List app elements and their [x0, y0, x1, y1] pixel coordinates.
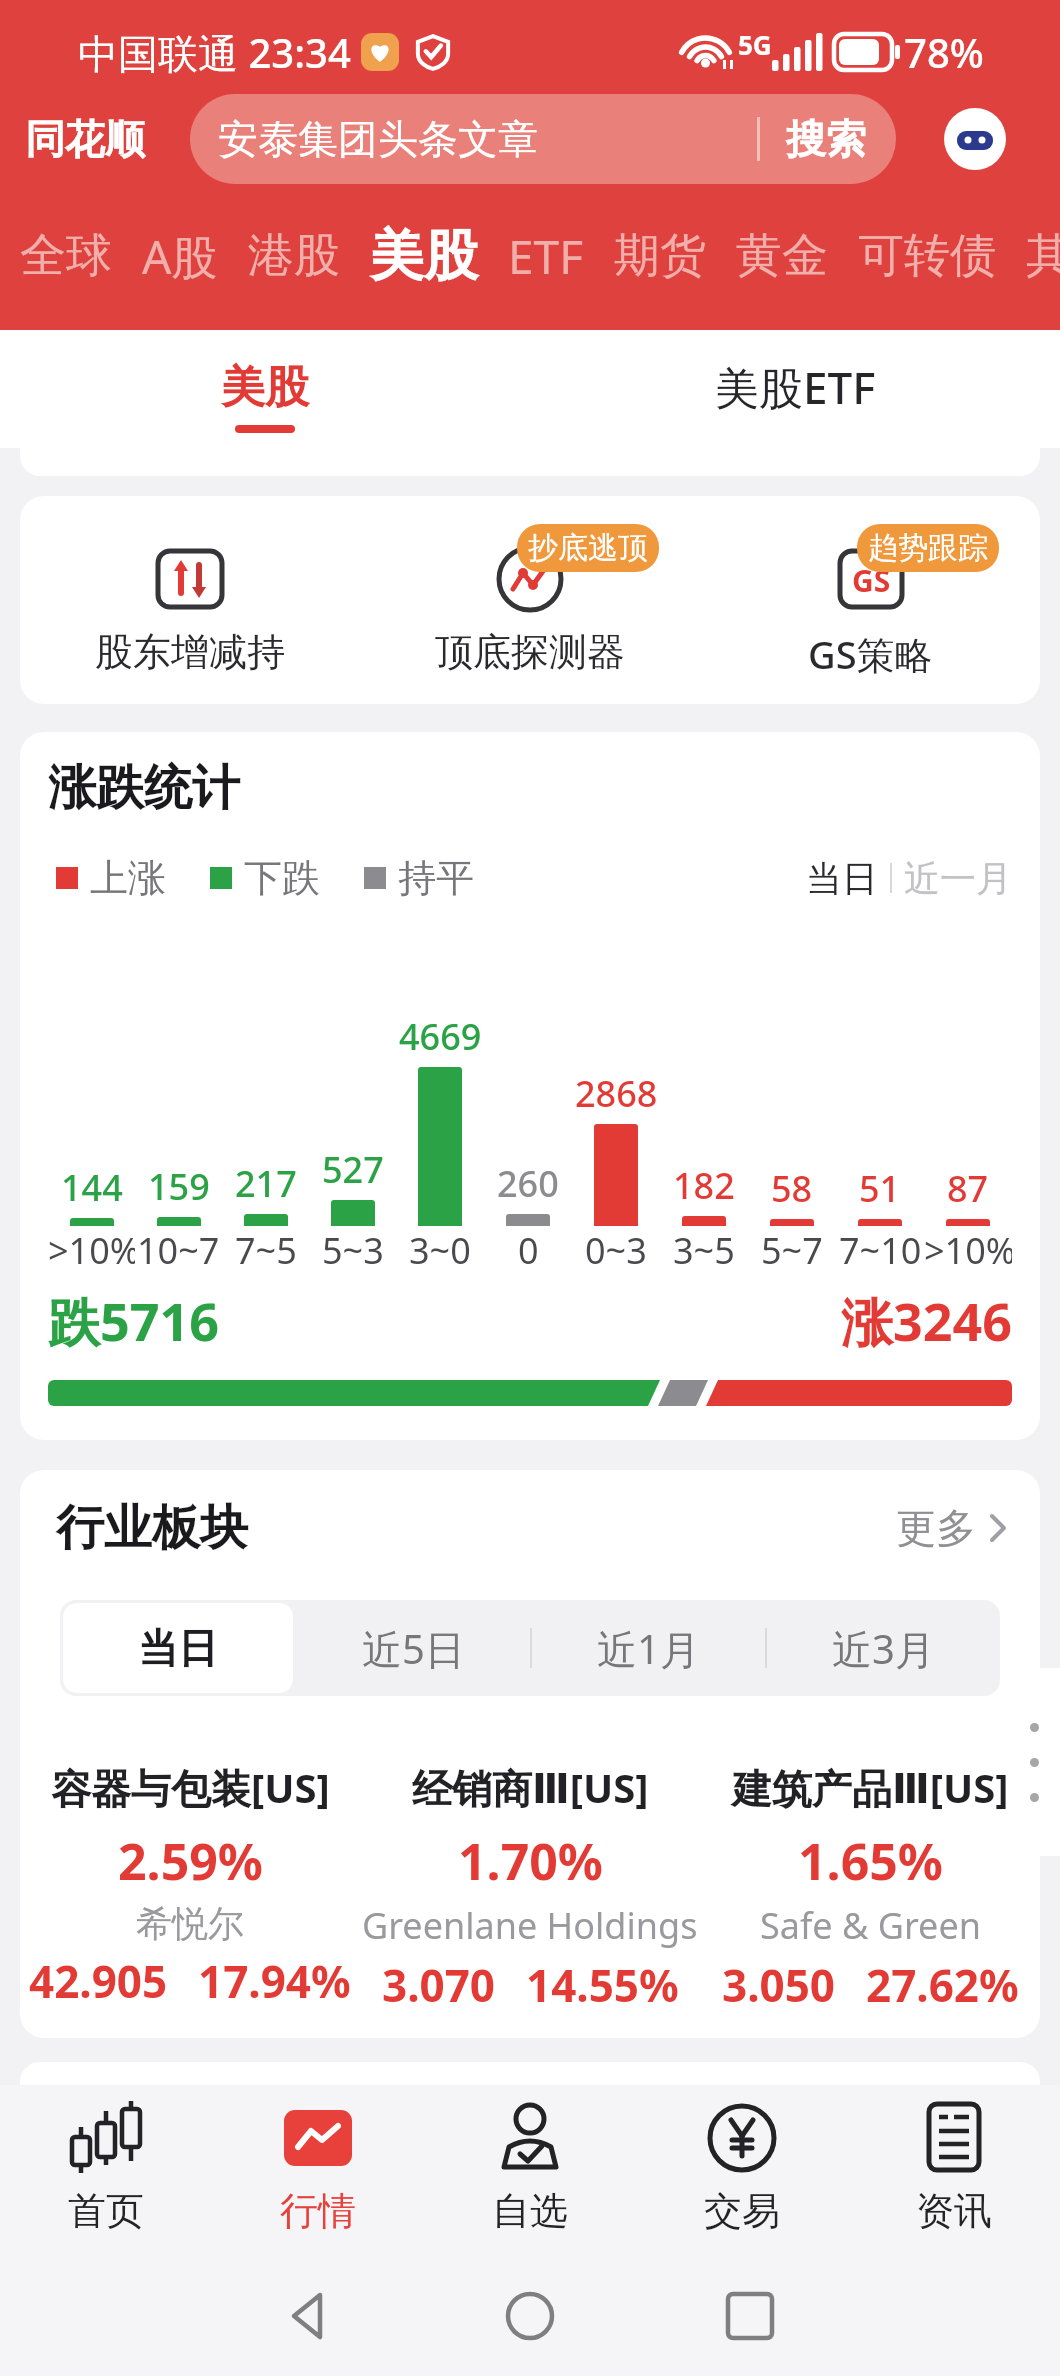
- staticText: 安泰集团头条文章: [218, 114, 538, 164]
- button[interactable]: 近3月: [767, 1600, 1000, 1696]
- button[interactable]: [284, 2290, 336, 2342]
- button[interactable]: [1008, 1668, 1060, 1856]
- staticText: 上涨: [90, 854, 166, 902]
- button[interactable]: 当日: [63, 1603, 293, 1693]
- button[interactable]: ETF: [508, 225, 584, 288]
- staticText: 4669: [399, 1012, 482, 1061]
- staticText: 5~3: [322, 1226, 384, 1275]
- button[interactable]: 期货: [614, 227, 706, 285]
- staticText: Safe & Green: [760, 1901, 981, 1950]
- staticText: 3.050: [722, 1955, 836, 2015]
- staticText: 5~7: [761, 1226, 823, 1275]
- staticText: >10%: [924, 1226, 1012, 1275]
- staticText: 行情: [280, 2187, 356, 2235]
- staticText: 自选: [492, 2187, 568, 2235]
- button[interactable]: 可转债: [858, 227, 996, 285]
- staticText: 78%: [904, 25, 984, 79]
- staticText: 3~5: [673, 1226, 735, 1275]
- staticText: 527: [322, 1145, 384, 1194]
- staticText: 下跌: [244, 854, 320, 902]
- button[interactable]: 当日: [806, 856, 878, 901]
- button[interactable]: 全球: [20, 227, 112, 285]
- button[interactable]: 股东增减持: [20, 496, 360, 704]
- staticText: 当日: [138, 1623, 218, 1673]
- staticText: 美股: [221, 360, 309, 415]
- staticText: 经销商Ⅲ[US]: [412, 1760, 649, 1815]
- button[interactable]: 资讯: [848, 2099, 1060, 2235]
- button[interactable]: 经销商Ⅲ[US]: [360, 1760, 700, 2015]
- button[interactable]: 美股ETF: [530, 330, 1060, 448]
- button[interactable]: 容器与包装[US]: [20, 1760, 360, 2011]
- button[interactable]: 顶底探测器: [360, 496, 700, 704]
- button[interactable]: 其他: [1026, 227, 1060, 285]
- staticText: 3.070: [382, 1955, 496, 2015]
- button[interactable]: [942, 106, 1008, 172]
- staticText: 搜索: [786, 114, 866, 164]
- staticText: 资讯: [916, 2187, 992, 2235]
- staticText: 跌5716: [48, 1285, 219, 1356]
- staticText: 260: [497, 1159, 559, 1208]
- staticText: 159: [148, 1162, 210, 1211]
- staticText: 行业板块: [56, 1498, 248, 1558]
- staticText: 建筑产品Ⅲ[US]: [732, 1760, 1009, 1815]
- staticText: 涨3246: [841, 1285, 1012, 1356]
- staticText: 3~0: [409, 1226, 471, 1275]
- button[interactable]: 近一月: [904, 856, 1012, 901]
- button[interactable]: 港股: [248, 227, 340, 285]
- button[interactable]: 交易: [636, 2099, 848, 2235]
- staticText: 中国联通 23:34: [78, 25, 351, 80]
- button[interactable]: 自选: [424, 2099, 636, 2235]
- button[interactable]: 黄金: [736, 227, 828, 285]
- button[interactable]: 美股: [0, 330, 530, 448]
- button[interactable]: 首页: [0, 2099, 212, 2235]
- staticText: 美股ETF: [715, 357, 876, 417]
- staticText: 58: [771, 1164, 813, 1213]
- staticText: 2.59%: [118, 1827, 263, 1895]
- staticText: >10%: [48, 1226, 135, 1275]
- staticText: 趋势跟踪: [868, 529, 988, 567]
- staticText: 1.65%: [798, 1827, 943, 1895]
- staticText: 27.62%: [866, 1955, 1019, 2015]
- staticText: 14.55%: [526, 1955, 679, 2015]
- staticText: 0~3: [585, 1226, 647, 1275]
- staticText: 股东增减持: [95, 628, 285, 676]
- staticText: 抄底逃顶: [528, 529, 648, 567]
- button[interactable]: [504, 2290, 556, 2342]
- button[interactable]: 美股: [370, 222, 478, 290]
- staticText: GS: [852, 560, 891, 601]
- staticText: 87: [947, 1164, 989, 1213]
- staticText: 5G: [738, 27, 772, 62]
- staticText: GS策略: [808, 628, 933, 680]
- staticText: 近1月: [597, 1621, 700, 1676]
- staticText: 希悦尔: [136, 1901, 244, 1946]
- button[interactable]: 更多: [896, 1503, 1010, 1553]
- button[interactable]: 近1月: [532, 1600, 765, 1696]
- button[interactable]: 行情: [212, 2099, 424, 2235]
- button[interactable]: A股: [142, 225, 218, 288]
- staticText: 144: [61, 1163, 123, 1212]
- staticText: 7~10: [839, 1226, 922, 1275]
- staticText: Greenlane Holdings: [362, 1901, 698, 1950]
- staticText: 1.70%: [458, 1827, 603, 1895]
- staticText: 持平: [398, 854, 474, 902]
- staticText: 51: [859, 1164, 901, 1213]
- staticText: 近3月: [832, 1621, 935, 1676]
- button[interactable]: 安泰集团头条文章: [190, 94, 896, 184]
- button[interactable]: [724, 2290, 776, 2342]
- staticText: 容器与包装[US]: [51, 1760, 330, 1815]
- staticText: 同花顺: [25, 114, 145, 164]
- button[interactable]: 近5日: [296, 1600, 530, 1696]
- staticText: 顶底探测器: [435, 628, 625, 676]
- staticText: 首页: [68, 2187, 144, 2235]
- button[interactable]: 建筑产品Ⅲ[US]: [700, 1760, 1040, 2015]
- staticText: 交易: [704, 2187, 780, 2235]
- staticText: 217: [235, 1159, 297, 1208]
- staticText: 近5日: [362, 1621, 465, 1676]
- staticText: 7~5: [235, 1226, 297, 1275]
- button[interactable]: GS: [700, 496, 1040, 704]
- staticText: 涨跌统计: [48, 758, 240, 818]
- staticText: 0: [518, 1226, 539, 1275]
- staticText: 更多: [896, 1503, 976, 1553]
- staticText: 2868: [575, 1069, 658, 1118]
- staticText: 17.94%: [198, 1951, 351, 2011]
